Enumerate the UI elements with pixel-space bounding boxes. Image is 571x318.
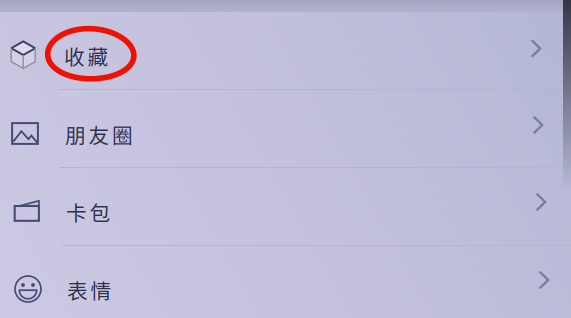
- button[interactable]: 朋友圈 Moments: [0, 90, 571, 168]
- staticText: 朋友圈: [65, 119, 133, 149]
- staticText: 收藏: [64, 41, 108, 71]
- staticText: 卡包: [66, 197, 110, 227]
- staticText: 表情: [67, 275, 111, 305]
- button[interactable]: 卡包 Cards & Offers: [0, 168, 571, 246]
- button[interactable]: 表情 Stickers: [0, 246, 571, 318]
- button[interactable]: 收藏 Favorites: [0, 12, 571, 90]
